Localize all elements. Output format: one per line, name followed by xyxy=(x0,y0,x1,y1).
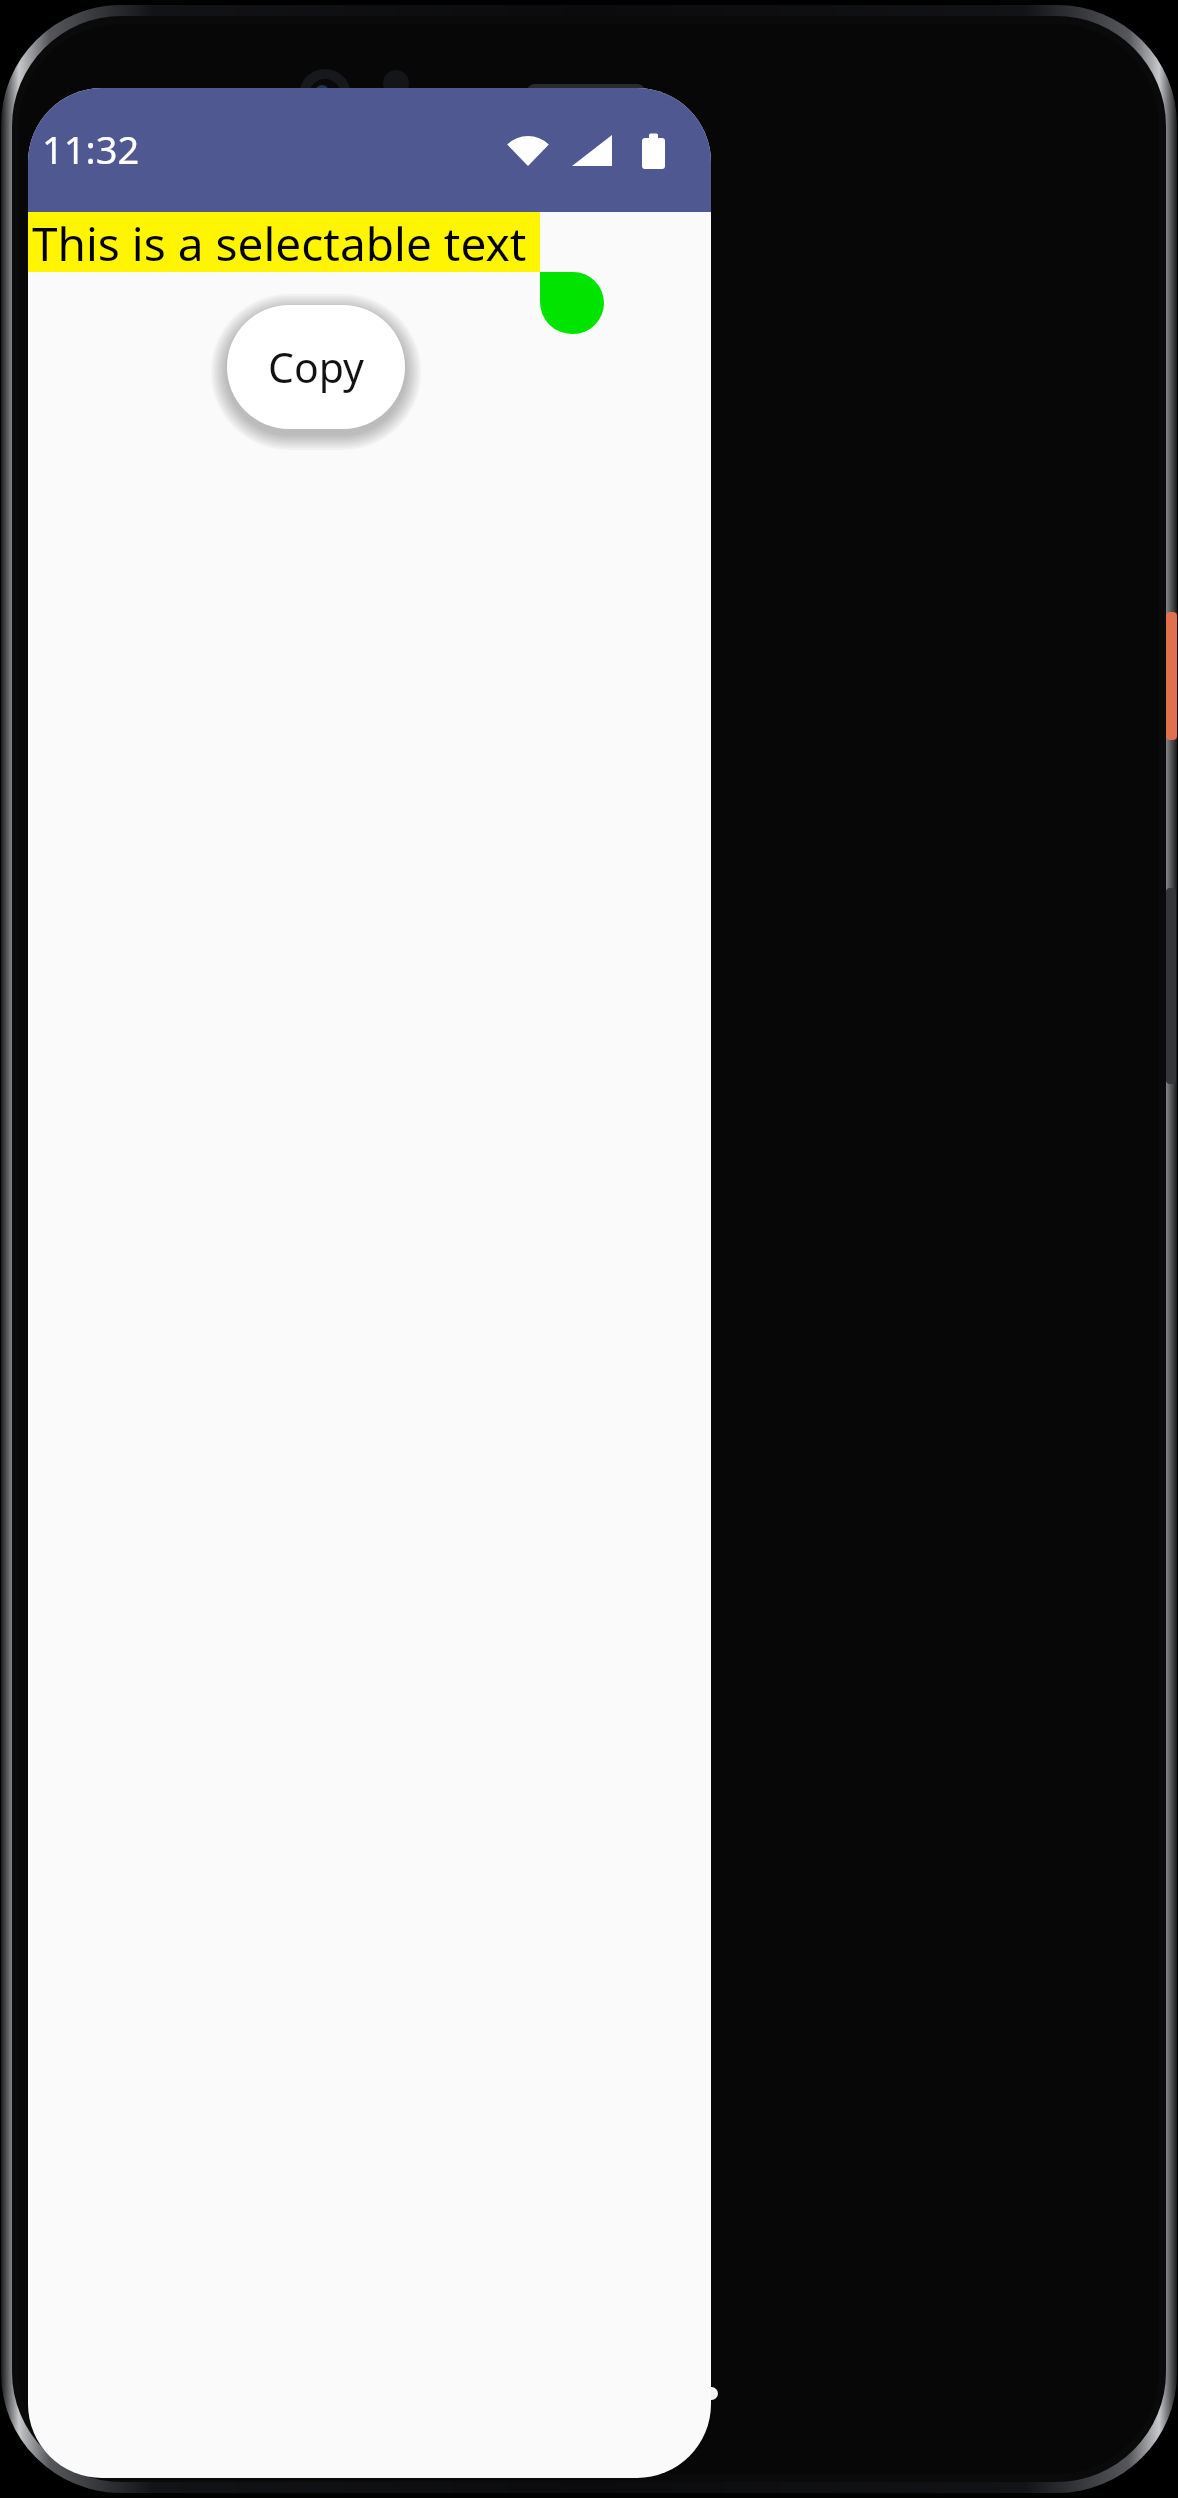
staticText: 11:32 xyxy=(42,123,140,175)
button[interactable]: Copy xyxy=(227,305,405,429)
staticText: Copy xyxy=(268,339,365,395)
button[interactable]: Selection handle xyxy=(540,272,604,334)
button[interactable]: This is a selectable text xyxy=(28,212,540,272)
staticText: This is a selectable text xyxy=(32,212,527,272)
